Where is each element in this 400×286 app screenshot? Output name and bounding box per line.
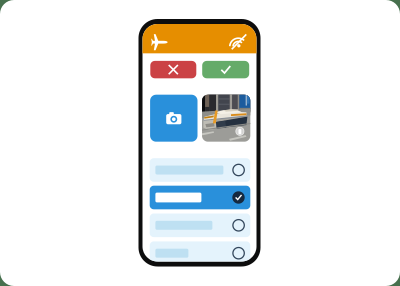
button[interactable]: Flight mode [142, 24, 164, 46]
button[interactable] [150, 241, 250, 265]
button[interactable]: Wi-Fi off [142, 24, 164, 46]
button[interactable] [150, 186, 250, 209]
button[interactable] [150, 213, 250, 237]
button[interactable]: Delete photo [202, 95, 215, 108]
button[interactable]: Take photo [150, 95, 197, 142]
button[interactable] [150, 158, 250, 182]
button[interactable]: Reject [150, 61, 196, 78]
button[interactable]: Accept [202, 61, 249, 78]
